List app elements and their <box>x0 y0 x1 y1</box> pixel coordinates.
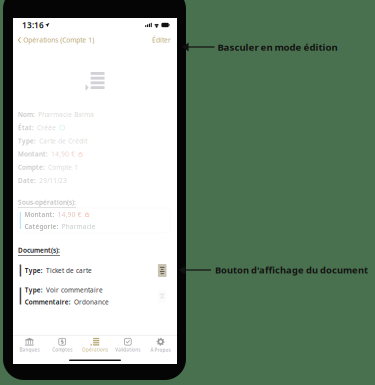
button[interactable]: Validations <box>111 335 144 355</box>
button[interactable]: Banques <box>13 335 46 355</box>
staticText: Banques <box>19 347 39 353</box>
staticText: 13:16 <box>22 19 44 31</box>
staticText: État: <box>18 123 34 132</box>
staticText: Validations <box>115 347 140 353</box>
staticText: Document(s): <box>18 246 60 255</box>
staticText: Ordonance <box>74 298 109 306</box>
staticText: Type: <box>25 266 43 275</box>
staticText: Pharmacie Balma <box>38 110 94 119</box>
staticText: Type: <box>18 136 36 145</box>
staticText: Opérations (Compte 1) <box>23 35 94 45</box>
staticText: Catégorie: <box>25 222 59 231</box>
staticText: Pharmacie <box>62 222 96 231</box>
staticText: Bouton d'affichage du document <box>215 264 368 276</box>
button[interactable]: Opérations (Compte 1) <box>13 32 94 48</box>
button[interactable]: Comptes <box>46 335 79 355</box>
button[interactable]: Afficher le document <box>158 289 170 302</box>
staticText: Date: <box>18 176 36 185</box>
staticText: Comptes <box>52 347 72 353</box>
staticText: Type: <box>25 285 43 294</box>
button[interactable]: À Propos <box>144 335 177 355</box>
staticText: Éditer <box>152 35 171 45</box>
staticText: Commentaire: <box>25 298 71 306</box>
staticText: Voir commentaire <box>46 285 103 294</box>
staticText: Sous-opération(s): <box>18 198 76 207</box>
staticText: 14,90 € <box>58 210 82 219</box>
staticText: Compte: <box>18 163 45 172</box>
staticText: Opérations <box>82 347 108 353</box>
staticText: Montant: <box>18 150 48 158</box>
staticText: Ticket de carte <box>46 266 92 275</box>
staticText: À Propos <box>151 347 171 353</box>
button[interactable]: Éditer <box>152 32 177 48</box>
staticText: Montant: <box>25 210 55 219</box>
button[interactable]: Opérations <box>79 335 111 355</box>
staticText: Compte 1 <box>48 163 78 172</box>
staticText: Créée <box>37 123 56 132</box>
staticText: 14,90 € <box>51 150 75 158</box>
button[interactable]: Afficher le document <box>158 264 170 277</box>
staticText: 29/11/23 <box>39 176 67 185</box>
staticText: Carte de Crédit <box>39 136 87 145</box>
staticText: Nom: <box>18 110 35 119</box>
staticText: Basculer en mode édition <box>217 40 337 54</box>
